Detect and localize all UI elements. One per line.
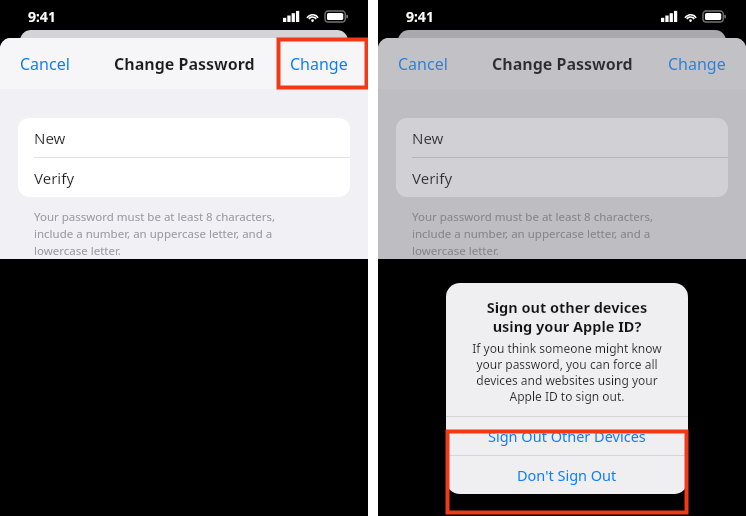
- staticText: Your password must be at least 8 charact…: [412, 209, 654, 259]
- button[interactable]: New: [18, 118, 350, 157]
- staticText: New: [412, 128, 444, 148]
- staticText: Verify: [34, 168, 75, 188]
- staticText: If you think someone might know your pas…: [454, 340, 680, 404]
- button[interactable]: Cancel: [378, 40, 468, 88]
- button[interactable]: Change: [648, 40, 746, 88]
- staticText: Change: [290, 53, 348, 75]
- staticText: Change: [668, 53, 726, 75]
- button[interactable]: New: [396, 118, 728, 157]
- staticText: Cancel: [20, 53, 70, 75]
- staticText: Change Password: [114, 53, 255, 75]
- button[interactable]: Sign Out Other Devices: [446, 417, 688, 455]
- button[interactable]: Cancel: [0, 40, 90, 88]
- staticText: 9:41: [28, 7, 56, 26]
- button[interactable]: Verify: [396, 158, 728, 197]
- staticText: Sign Out Other Devices: [488, 426, 646, 446]
- staticText: Verify: [412, 168, 453, 188]
- staticText: Change Password: [492, 53, 633, 75]
- button[interactable]: Verify: [18, 158, 350, 197]
- staticText: Cancel: [398, 53, 448, 75]
- staticText: Your password must be at least 8 charact…: [34, 209, 276, 259]
- staticText: New: [34, 128, 66, 148]
- staticText: 9:41: [406, 7, 434, 26]
- staticText: Sign out other devices using your Apple …: [456, 297, 678, 336]
- button[interactable]: Change: [270, 40, 368, 88]
- staticText: Don't Sign Out: [517, 465, 617, 485]
- button[interactable]: Don't Sign Out: [446, 456, 688, 494]
